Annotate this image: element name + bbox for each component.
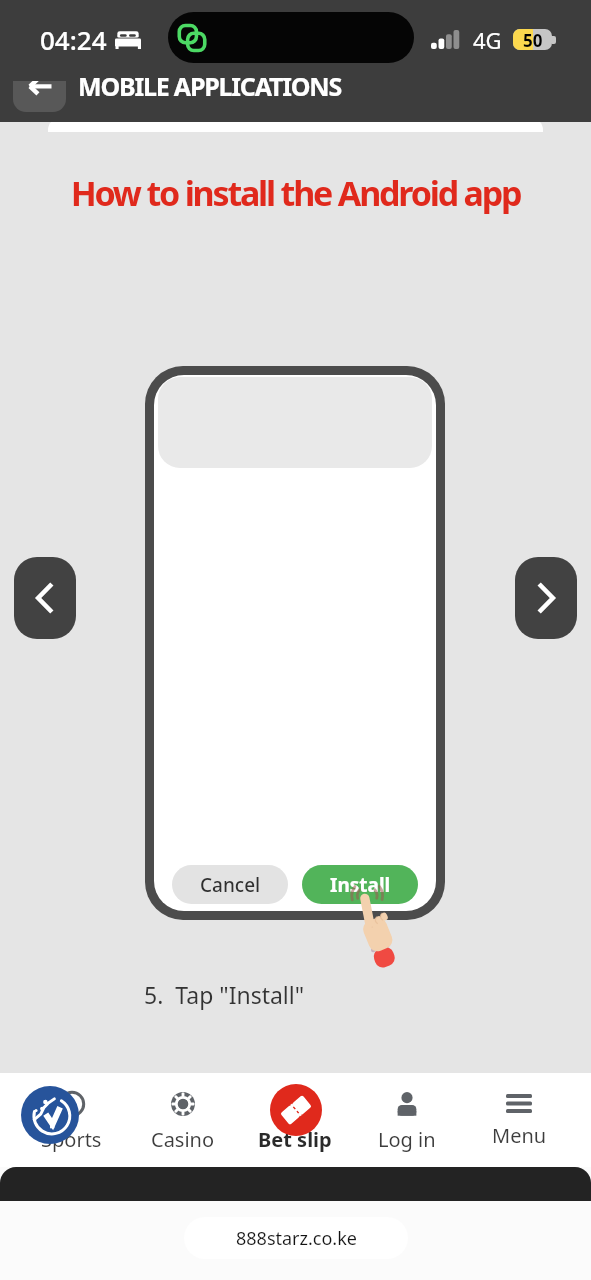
staticText: 5. Tap "Install" [144, 979, 305, 1010]
staticText: Casino [151, 1126, 215, 1153]
button[interactable]: Install [302, 865, 418, 904]
staticText: How to install the Android app [0, 170, 591, 216]
button[interactable]: Back [13, 81, 66, 112]
button[interactable]: Menu [463, 1073, 575, 1167]
staticText: Install [330, 872, 391, 898]
staticText: 50 [523, 29, 543, 50]
button[interactable]: Previous slide [14, 557, 76, 639]
staticText: 4G [473, 25, 502, 55]
staticText: Cancel [200, 872, 261, 898]
staticText: Log in [378, 1126, 436, 1153]
staticText: Sports [41, 1126, 102, 1153]
button[interactable]: Casino [127, 1073, 239, 1167]
staticText: Bet slip [258, 1126, 332, 1153]
staticText: MOBILE APPLICATIONS [78, 69, 342, 103]
staticText: Menu [492, 1122, 547, 1149]
staticText: 888starz.co.ke [236, 1226, 357, 1251]
button[interactable]: Bet slip [270, 1084, 322, 1136]
staticText: 04:24 [40, 22, 107, 57]
button[interactable]: 888starz.co.ke [184, 1217, 408, 1259]
button[interactable]: Next slide [515, 557, 577, 639]
button[interactable]: 888starz [21, 1086, 79, 1144]
button[interactable]: Bet slip [239, 1073, 351, 1167]
button[interactable]: Cancel [172, 865, 288, 904]
button[interactable]: Log in [351, 1073, 463, 1167]
button[interactable]: Sports [16, 1073, 127, 1167]
